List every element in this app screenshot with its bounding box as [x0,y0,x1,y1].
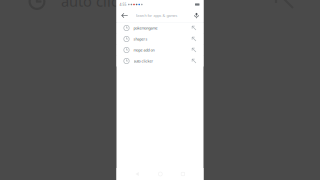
button[interactable]: auto clicker [116,55,203,66]
button[interactable]: Back [135,172,139,176]
staticText: shapers [133,36,147,42]
staticText: mope add on [133,47,154,53]
button[interactable]: Search for apps & games [116,9,173,22]
button[interactable]: Voice search [190,9,202,22]
staticText: 4:55 [119,2,126,7]
staticText: Search for apps & games [135,13,177,18]
button[interactable]: shapers [116,33,203,44]
staticText: auto clicker [133,58,153,64]
staticText: pokemongame [133,25,157,31]
button[interactable]: Recent apps [181,172,185,176]
button[interactable]: mope add on [116,44,203,55]
button[interactable]: Back [118,9,130,22]
button[interactable]: Home [158,172,162,176]
staticText: auto clicker [61,0,140,11]
button[interactable]: pokemongame [116,22,203,33]
